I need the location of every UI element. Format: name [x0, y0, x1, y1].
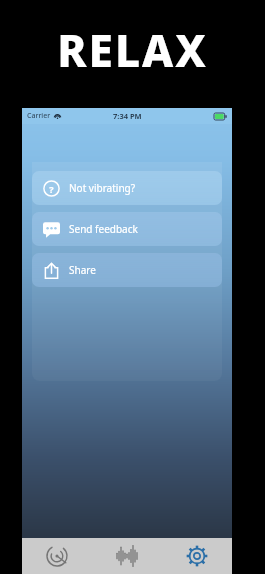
staticText: ?	[49, 183, 54, 195]
button[interactable]: ?	[32, 171, 222, 205]
staticText: 7:34 PM	[113, 111, 142, 121]
button[interactable]: Settings	[162, 538, 232, 574]
button[interactable]: Send feedback	[32, 212, 222, 246]
button[interactable]: Detect	[22, 538, 92, 574]
staticText: Send feedback	[69, 222, 138, 236]
staticText: RELAX	[57, 20, 208, 80]
button[interactable]: Share	[32, 253, 222, 287]
staticText: Not vibrating?	[69, 181, 136, 195]
staticText: Carrier	[27, 111, 51, 121]
button[interactable]: Waveform	[92, 538, 162, 574]
staticText: Share	[69, 263, 96, 277]
